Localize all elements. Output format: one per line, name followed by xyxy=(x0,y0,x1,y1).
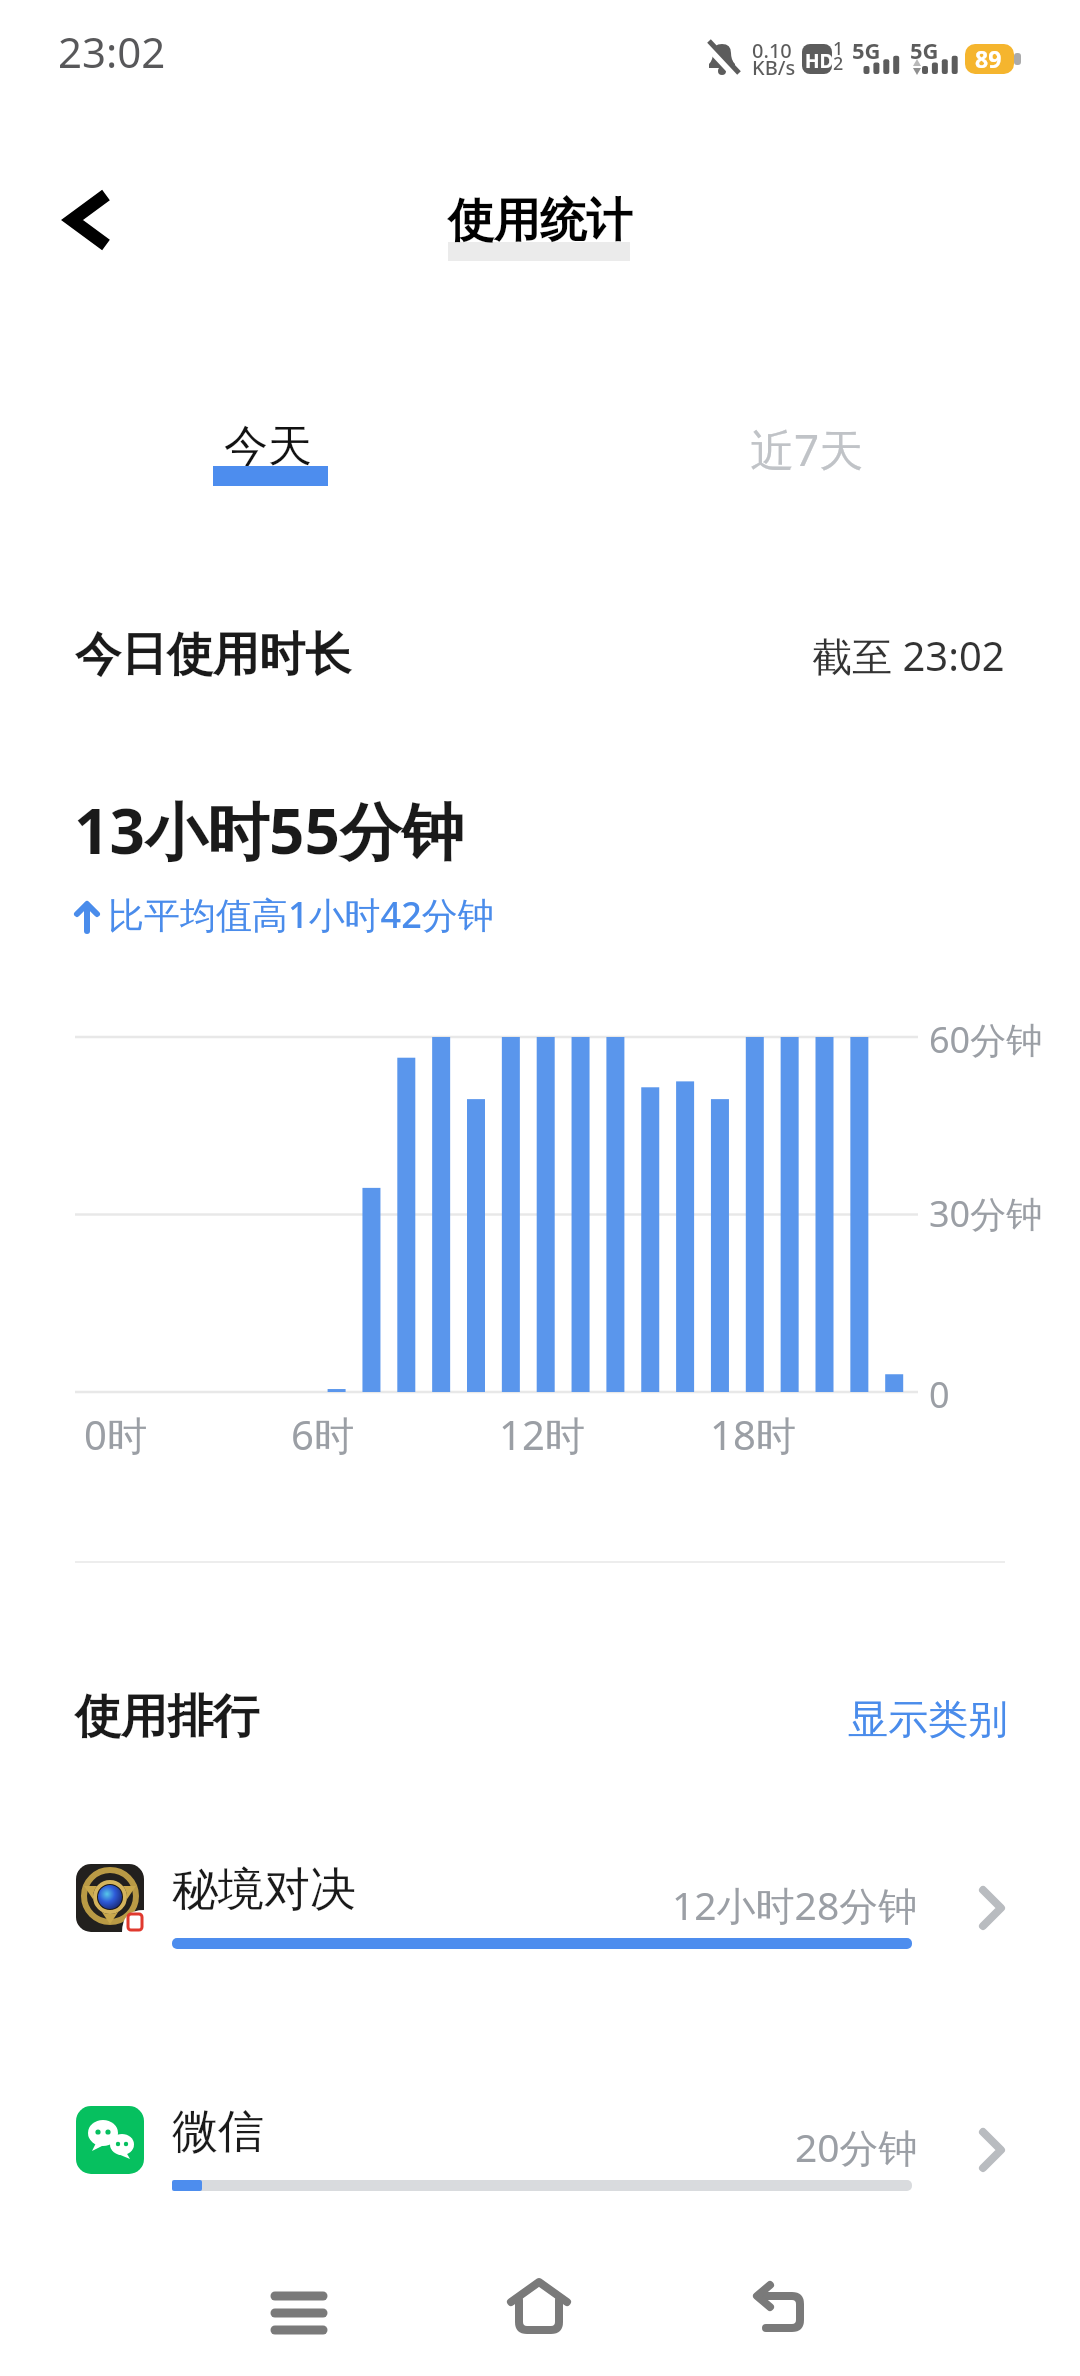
button[interactable] xyxy=(48,175,128,265)
staticText: 比平均值高1小时42分钟 xyxy=(108,890,494,939)
button[interactable] xyxy=(706,2260,850,2370)
staticText: 0.10 xyxy=(752,37,792,64)
staticText: 5G xyxy=(910,35,939,65)
staticText: 使用统计 xyxy=(448,192,632,250)
staticText: 5G xyxy=(852,35,881,65)
button[interactable]: 近7天 xyxy=(730,400,890,500)
staticText: KB/s xyxy=(752,54,796,81)
staticText: HD xyxy=(805,48,834,74)
staticText: 2 xyxy=(833,51,844,76)
staticText: 20分钟 xyxy=(795,2120,918,2173)
staticText: 30分钟 xyxy=(929,1189,1043,1238)
staticText: 截至 23:02 xyxy=(812,628,1005,683)
button[interactable] xyxy=(467,2260,611,2370)
staticText: 近7天 xyxy=(750,419,864,479)
staticText: 1 xyxy=(833,36,844,61)
staticText: 0 xyxy=(929,1370,950,1419)
staticText: 13小时55分钟 xyxy=(74,788,464,873)
button[interactable]: 秘境对决 xyxy=(40,1848,1040,1968)
staticText: 23:02 xyxy=(58,23,166,80)
staticText: 今天 xyxy=(224,419,312,474)
staticText: 0时 xyxy=(84,1407,147,1462)
staticText: 18时 xyxy=(710,1407,796,1462)
staticText: 今日使用时长 xyxy=(75,626,351,684)
staticText: 微信 xyxy=(172,2103,264,2161)
staticText: 秘境对决 xyxy=(172,1861,356,1919)
button[interactable] xyxy=(227,2260,371,2370)
staticText: 12时 xyxy=(499,1407,585,1462)
staticText: 60分钟 xyxy=(929,1015,1043,1064)
button[interactable]: 微信 xyxy=(40,2090,1040,2210)
staticText: 12小时28分钟 xyxy=(672,1878,918,1931)
button[interactable]: 显示类别 xyxy=(0,0,160,50)
staticText: 6时 xyxy=(291,1407,354,1462)
staticText: 89 xyxy=(975,43,1002,74)
button[interactable]: 今天 xyxy=(190,400,350,500)
staticText: 使用排行 xyxy=(75,1688,259,1746)
